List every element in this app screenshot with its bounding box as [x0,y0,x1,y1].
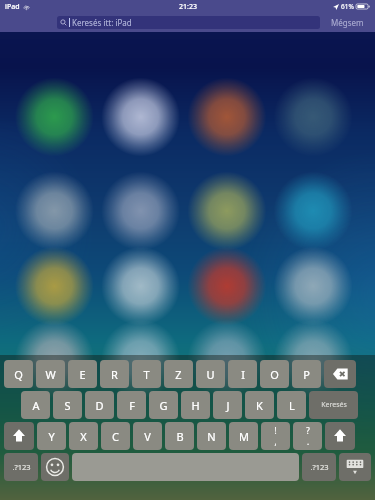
staticText: ? . [306,425,310,447]
staticText: I [241,367,245,382]
staticText: .?123 [12,462,31,472]
staticText: X [80,429,87,444]
button[interactable]: T [132,360,161,388]
button[interactable]: W [36,360,65,388]
button[interactable]: ? . [293,422,322,450]
button[interactable]: K [245,391,274,419]
button[interactable]: Q [4,360,33,388]
button[interactable]: G [149,391,178,419]
staticText: Mégsem [331,17,364,28]
staticText: M [239,429,249,444]
staticText: L [289,398,295,413]
button[interactable]: Mégsem [320,13,375,32]
button[interactable]: Hide keyboard [339,453,371,481]
button[interactable]: Keresés itt: iPad [57,16,320,29]
staticText: H [191,398,200,413]
button[interactable]: F [117,391,146,419]
staticText: R [111,367,118,382]
button[interactable]: X [69,422,98,450]
staticText: E [79,367,86,382]
button[interactable]: Z [164,360,193,388]
staticText: A [32,398,40,413]
staticText: J [226,398,230,413]
staticText: Q [14,367,23,382]
staticText: 61% [341,2,354,11]
staticText: ! , [274,425,277,447]
staticText: W [45,367,56,382]
staticText: D [95,398,104,413]
button[interactable]: Emoji [41,453,69,481]
button[interactable]: ! , [261,422,290,450]
staticText: Z [175,367,182,382]
staticText: .?123 [310,462,329,472]
staticText: V [144,429,151,444]
button[interactable]: O [260,360,289,388]
button[interactable]: B [165,422,194,450]
staticText: T [143,367,150,382]
staticText: P [303,367,310,382]
button[interactable]: A [21,391,50,419]
staticText: N [207,429,216,444]
button[interactable]: Space [72,453,299,481]
staticText: Y [48,429,55,444]
button[interactable]: U [196,360,225,388]
button[interactable]: P [292,360,321,388]
staticText: iPad [5,2,20,12]
staticText: B [176,429,184,444]
button[interactable]: Shift [325,422,355,450]
button[interactable]: D [85,391,114,419]
staticText: F [129,398,135,413]
button[interactable]: .?123 [4,453,38,481]
button[interactable]: L [277,391,306,419]
button[interactable]: N [197,422,226,450]
button[interactable]: V [133,422,162,450]
button[interactable]: H [181,391,210,419]
button[interactable]: C [101,422,130,450]
staticText: 21:23 [179,2,197,12]
staticText: Keresés itt: iPad [72,17,132,28]
staticText: G [159,398,168,413]
staticText: C [112,429,119,444]
button[interactable]: Shift [4,422,34,450]
button[interactable]: Backspace [324,360,356,388]
staticText: U [206,367,215,382]
button[interactable]: E [68,360,97,388]
button[interactable]: R [100,360,129,388]
staticText: O [270,367,279,382]
staticText: K [256,398,263,413]
button[interactable]: M [229,422,258,450]
button[interactable]: .?123 [302,453,336,481]
button[interactable]: I [228,360,257,388]
staticText: Keresés [321,400,347,410]
button[interactable]: J [213,391,242,419]
button[interactable]: Keresés [309,391,358,419]
button[interactable]: Y [37,422,66,450]
button[interactable]: S [53,391,82,419]
staticText: S [64,398,71,413]
